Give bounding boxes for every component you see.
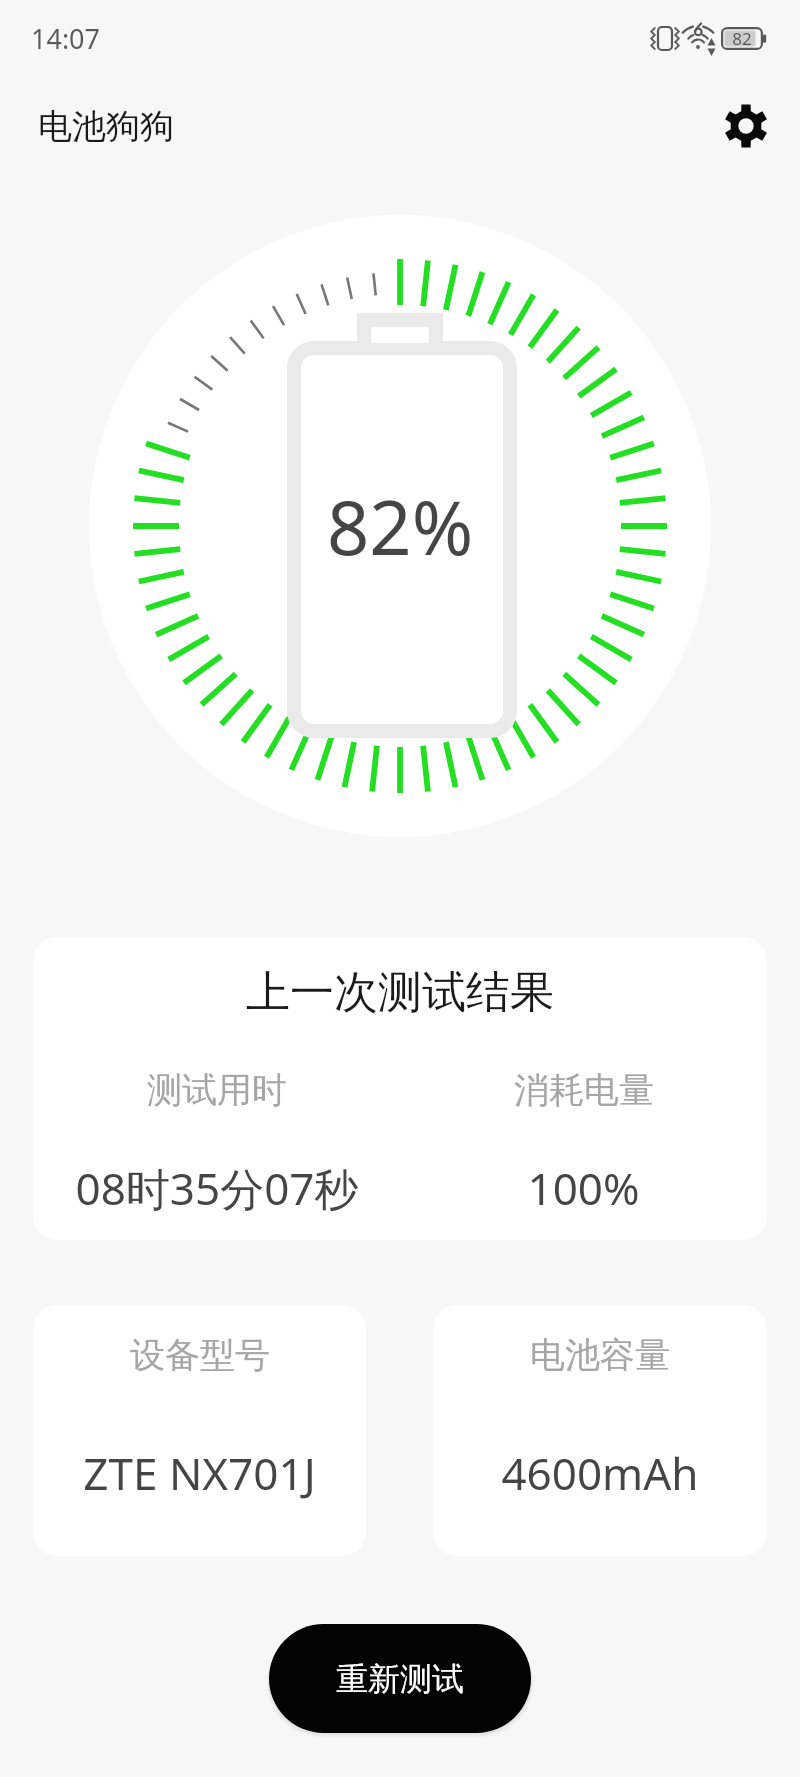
button[interactable]: 上一次测试结果 [33, 937, 767, 1240]
staticText: 测试用时 [147, 1068, 287, 1112]
staticText: 电池狗狗 [38, 105, 174, 148]
staticText: 08时35分07秒 [75, 1158, 359, 1218]
staticText: ZTE NX701J [83, 1443, 316, 1503]
button[interactable]: 重新测试 [269, 1624, 531, 1733]
staticText: 100% [527, 1158, 640, 1218]
button[interactable]: Settings [718, 98, 774, 154]
staticText: 82% [327, 476, 474, 577]
staticText: 电池容量 [530, 1333, 670, 1377]
staticText: 重新测试 [336, 1659, 464, 1699]
button[interactable]: 设备型号 [33, 1305, 366, 1556]
staticText: 14:07 [31, 20, 101, 57]
staticText: 4600mAh [501, 1443, 699, 1503]
button[interactable]: 电池容量 [433, 1305, 767, 1556]
staticText: 上一次测试结果 [33, 965, 767, 1020]
staticText: 消耗电量 [514, 1068, 654, 1112]
staticText: 82 [732, 27, 752, 50]
staticText: 设备型号 [130, 1333, 270, 1377]
